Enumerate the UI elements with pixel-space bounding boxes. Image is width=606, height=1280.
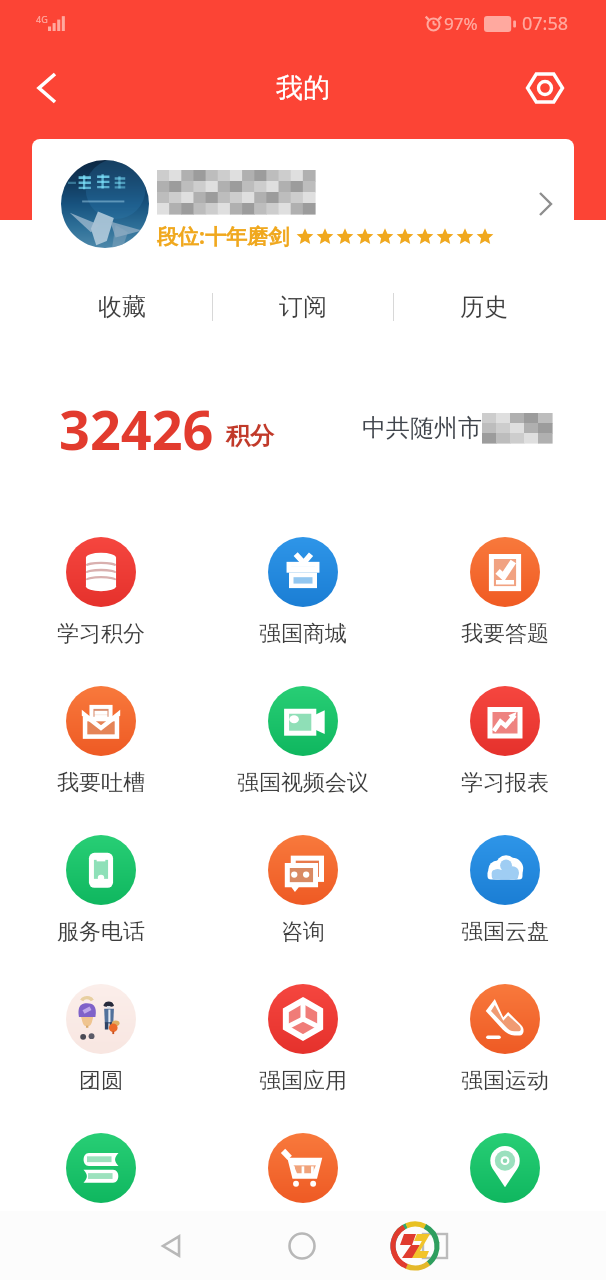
button[interactable]: 收藏 [32, 269, 212, 345]
button[interactable]: 强国视频会议 [202, 669, 404, 818]
button[interactable]: Settings [520, 63, 570, 113]
staticText: 中共随州市 [362, 413, 482, 443]
staticText: 我的 [276, 71, 330, 105]
button[interactable]: 学习报表 [404, 669, 606, 818]
button[interactable] [0, 1116, 202, 1265]
button[interactable]: 历史 [394, 269, 574, 345]
staticText: 订阅 [279, 292, 327, 322]
button[interactable]: 强国云盘 [404, 818, 606, 967]
button[interactable]: Home [269, 1213, 335, 1279]
button[interactable]: 段位:十年磨剑 [32, 139, 574, 269]
staticText: 学习积分 [57, 620, 145, 648]
staticText: 强国视频会议 [237, 769, 369, 797]
button[interactable]: 32426 [32, 364, 574, 479]
staticText: 强国商城 [259, 620, 347, 648]
staticText: 咨询 [281, 918, 325, 946]
staticText: 97% [444, 12, 478, 35]
button[interactable]: 强国商城 [202, 520, 404, 669]
button[interactable]: 强国运动 [404, 967, 606, 1116]
staticText: 强国运动 [461, 1067, 549, 1095]
button[interactable]: 咨询 [202, 818, 404, 967]
staticText: 段位:十年磨剑 [157, 222, 289, 251]
staticText: 32426 [59, 392, 214, 466]
button[interactable] [404, 1116, 606, 1265]
staticText: 收藏 [98, 292, 146, 322]
staticText: 服务电话 [57, 918, 145, 946]
staticText: 07:58 [522, 11, 569, 36]
button[interactable]: 学习积分 [0, 520, 202, 669]
staticText: 我要答题 [461, 620, 549, 648]
staticText: 4G [36, 13, 48, 25]
staticText: 积分 [226, 421, 274, 451]
button[interactable]: 团圆 [0, 967, 202, 1116]
button[interactable]: Back [139, 1213, 205, 1279]
staticText: 我要吐槽 [57, 769, 145, 797]
staticText: 学习报表 [461, 769, 549, 797]
staticText: 强国应用 [259, 1067, 347, 1095]
button[interactable]: 强国应用 [202, 967, 404, 1116]
staticText: 强国云盘 [461, 918, 549, 946]
staticText: 团圆 [79, 1067, 123, 1095]
button[interactable] [202, 1116, 404, 1265]
button[interactable]: Recents [387, 1213, 453, 1279]
button[interactable]: 我要答题 [404, 520, 606, 669]
button[interactable]: Back [20, 61, 74, 115]
button[interactable]: 订阅 [213, 269, 393, 345]
button[interactable]: 我要吐槽 [0, 669, 202, 818]
button[interactable]: 服务电话 [0, 818, 202, 967]
staticText: 历史 [460, 292, 508, 322]
